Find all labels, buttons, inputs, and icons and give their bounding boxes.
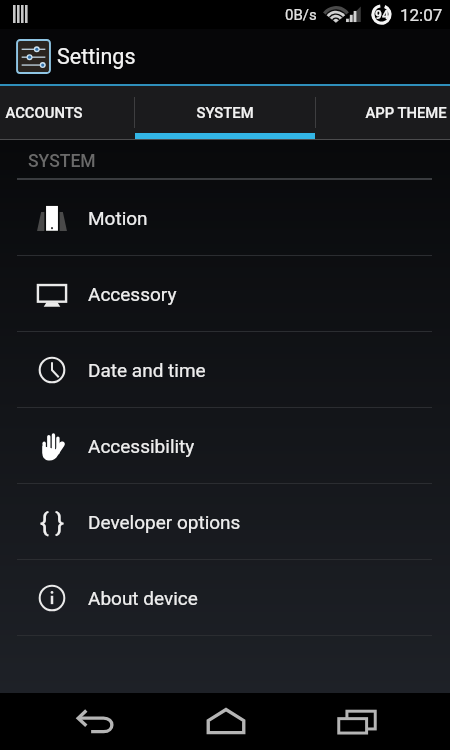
staticText: About device [88,587,198,609]
button[interactable]: Date and time [0,332,450,407]
staticText: Accessory [88,283,177,305]
staticText: SYSTEM [28,151,96,172]
button[interactable]: Motion [0,180,450,255]
staticText: 12:07 [400,5,443,25]
staticText: 94 [375,8,389,22]
button[interactable]: Recent apps [291,693,422,750]
button[interactable]: About device [0,560,450,635]
staticText: Settings [57,44,136,69]
button[interactable]: Settings [0,29,450,84]
staticText: { } [40,507,65,537]
staticText: Developer options [88,511,241,533]
button[interactable]: { } [0,484,450,559]
staticText: Motion [88,207,148,229]
staticText: APP THEME [365,104,447,121]
button[interactable]: Back [28,693,160,750]
button[interactable]: Home [160,693,291,750]
button[interactable]: APP THEME [316,86,450,139]
staticText: Date and time [88,359,206,381]
button[interactable]: SYSTEM [135,86,315,139]
button[interactable]: Accessory [0,256,450,331]
staticText: ACCOUNTS [5,104,83,121]
staticText: Accessibility [88,435,195,457]
button[interactable]: Accessibility [0,408,450,483]
staticText: 0B/s [285,6,317,24]
button[interactable]: ACCOUNTS [0,86,134,139]
staticText: SYSTEM [196,104,254,121]
